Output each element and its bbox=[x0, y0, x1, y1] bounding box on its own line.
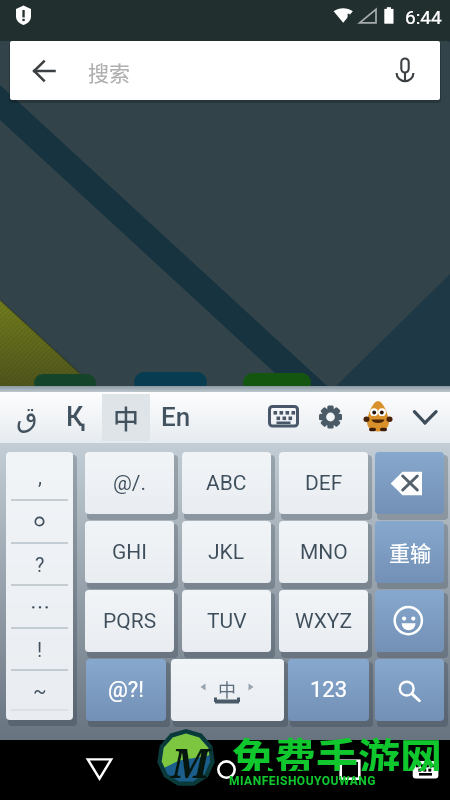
staticText: JKL bbox=[208, 540, 245, 565]
button[interactable]: 中 bbox=[102, 394, 150, 441]
staticText: @/. bbox=[113, 471, 147, 496]
button[interactable]: TUV bbox=[182, 590, 271, 652]
staticText: PQRS bbox=[103, 609, 157, 634]
button[interactable]: GHI bbox=[85, 521, 174, 583]
button[interactable]: ! bbox=[6, 628, 73, 670]
staticText: ~ bbox=[33, 679, 47, 702]
button[interactable]: JKL bbox=[182, 521, 271, 583]
button[interactable]: Switch keyboard bbox=[396, 740, 450, 800]
button[interactable] bbox=[375, 590, 444, 652]
staticText: ABC bbox=[206, 471, 247, 496]
staticText: 6:44 bbox=[405, 6, 442, 28]
button[interactable]: 搜索 bbox=[10, 41, 440, 100]
button[interactable]: Settings bbox=[310, 396, 352, 438]
staticText: ! bbox=[37, 638, 43, 661]
button[interactable]: ABC bbox=[182, 452, 271, 514]
button[interactable]: @?! bbox=[86, 659, 166, 721]
button[interactable]: ~ bbox=[6, 670, 73, 710]
staticText: MNO bbox=[300, 540, 348, 565]
button[interactable]: Қ bbox=[52, 392, 100, 442]
staticText: Қ bbox=[66, 401, 86, 433]
staticText: WXYZ bbox=[295, 609, 352, 634]
button[interactable]: Hide keyboard bbox=[404, 396, 446, 438]
button[interactable]: En bbox=[152, 392, 200, 442]
staticText: , bbox=[38, 465, 42, 488]
button[interactable]: ? bbox=[6, 543, 73, 585]
button[interactable] bbox=[102, 394, 150, 441]
staticText: MIANFEISHOUYOUWANG bbox=[229, 774, 376, 788]
staticText: En bbox=[161, 402, 191, 432]
button[interactable]: Keyboard layout bbox=[262, 396, 306, 438]
button[interactable]: … bbox=[6, 585, 73, 628]
button[interactable]: Back bbox=[70, 740, 130, 800]
button[interactable]: @/. bbox=[85, 452, 174, 514]
staticText: 搜索 bbox=[88, 57, 130, 87]
button[interactable]: , bbox=[6, 452, 73, 500]
staticText: GHI bbox=[112, 540, 147, 565]
button[interactable]: Home bbox=[197, 740, 257, 800]
button[interactable]: ق bbox=[0, 392, 54, 442]
staticText: 重输 bbox=[389, 537, 431, 567]
button[interactable] bbox=[6, 500, 73, 543]
staticText: @?! bbox=[108, 677, 144, 703]
button[interactable] bbox=[375, 659, 444, 721]
button[interactable]: MNO bbox=[279, 521, 368, 583]
button[interactable]: 123 bbox=[288, 659, 369, 721]
staticText: 123 bbox=[310, 677, 348, 703]
staticText: M bbox=[171, 735, 210, 789]
button[interactable]: Recents bbox=[320, 740, 380, 800]
staticText: … bbox=[30, 592, 50, 621]
button[interactable]: 重输 bbox=[375, 521, 444, 583]
staticText: 中 bbox=[113, 399, 140, 437]
button[interactable]: Emoji bbox=[358, 394, 398, 438]
staticText: TUV bbox=[207, 609, 247, 634]
button[interactable]: 中 bbox=[171, 659, 284, 721]
button[interactable]: DEF bbox=[279, 452, 368, 514]
button[interactable]: PQRS bbox=[85, 590, 174, 652]
staticText: ق bbox=[16, 401, 38, 434]
staticText: 免费手游网 bbox=[232, 725, 443, 771]
button[interactable] bbox=[375, 452, 444, 514]
staticText: 中 bbox=[218, 676, 236, 702]
button[interactable]: WXYZ bbox=[279, 590, 368, 652]
staticText: ? bbox=[35, 553, 45, 576]
staticText: DEF bbox=[305, 471, 343, 496]
